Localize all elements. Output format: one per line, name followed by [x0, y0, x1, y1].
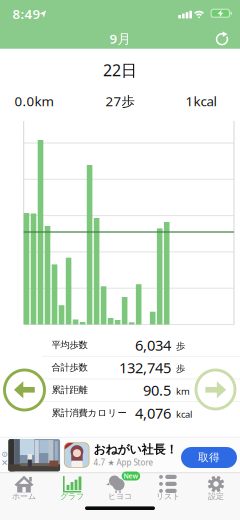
staticText: 合計歩数: [51, 362, 87, 373]
staticText: kcal: [176, 408, 192, 420]
staticText: リスト: [156, 491, 180, 501]
staticText: 累計距離: [51, 384, 87, 396]
staticText: 90.5: [143, 380, 171, 400]
staticText: 累計消費カロリー: [51, 407, 126, 419]
staticText: おねがい社長！: [93, 442, 177, 457]
button[interactable]: 取得: [181, 447, 237, 468]
button[interactable]: リスト: [144, 472, 192, 506]
button[interactable]: 次の月: [194, 368, 236, 410]
staticText: 132,745: [119, 358, 171, 377]
staticText: 1kcal: [185, 92, 216, 110]
staticText: 平均歩数: [51, 339, 87, 351]
staticText: ヒヨコ: [108, 491, 132, 501]
staticText: 4.7 ★ App Store: [93, 457, 153, 468]
staticText: 22日: [103, 59, 137, 81]
staticText: グラフ: [60, 491, 84, 501]
staticText: New: [123, 472, 138, 480]
staticText: 9月: [109, 30, 130, 47]
staticText: 歩: [176, 340, 185, 352]
button[interactable]: ヒヨコ: [96, 472, 144, 506]
staticText: 取得: [198, 451, 220, 464]
staticText: 設定: [208, 491, 224, 501]
button[interactable]: おねがい社長！: [93, 443, 179, 455]
button[interactable]: 設定: [192, 472, 240, 506]
staticText: ホーム: [12, 491, 36, 501]
staticText: 8:49: [12, 5, 40, 23]
staticText: km: [176, 385, 190, 397]
staticText: 6,034: [135, 335, 171, 355]
staticText: 0.0km: [14, 92, 53, 110]
button[interactable]: 前の月: [3, 368, 46, 411]
button[interactable]: 更新: [209, 26, 235, 52]
button[interactable]: グラフ: [48, 472, 96, 506]
staticText: 歩: [176, 363, 185, 374]
button[interactable]: ホーム: [0, 472, 48, 506]
staticText: 4,076: [135, 403, 171, 423]
staticText: 27歩: [105, 92, 134, 110]
